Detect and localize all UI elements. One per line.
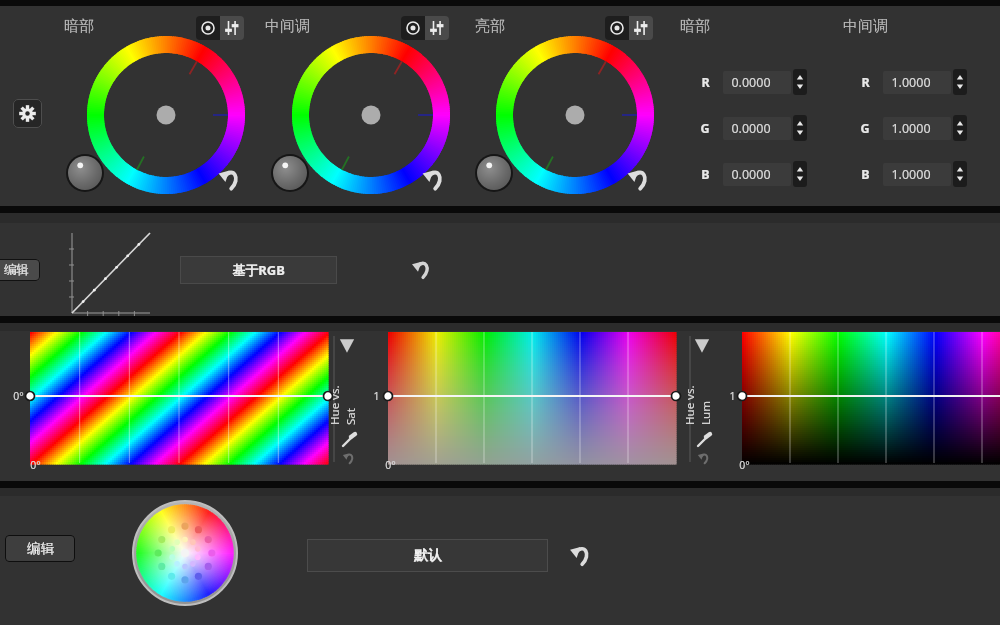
staticText: Hue vs. Lum [682, 375, 714, 425]
staticText: R [861, 74, 870, 91]
staticText: 1.0000 [891, 166, 931, 183]
staticText: 中间调 [843, 17, 888, 36]
staticText: Hue vs. Sat [327, 375, 359, 425]
button[interactable]: Slider mode [220, 16, 244, 40]
button[interactable]: Slider mode [629, 16, 653, 40]
staticText: 1.0000 [891, 74, 931, 91]
button[interactable]: 1.0000 [883, 117, 951, 140]
staticText: 0.0000 [731, 120, 771, 137]
staticText: G [860, 120, 870, 137]
staticText: B [701, 166, 710, 183]
button[interactable]: 0.0000 [723, 71, 791, 94]
button[interactable]: Adjust R [953, 69, 967, 95]
staticText: R [701, 74, 710, 91]
button[interactable]: Settings [13, 99, 42, 128]
staticText: 0.0000 [731, 74, 771, 91]
button[interactable]: 1.0000 [883, 163, 951, 186]
button[interactable]: 基于RGB [180, 256, 337, 284]
button[interactable]: Wheel mode [196, 16, 220, 40]
button[interactable]: Adjust R [793, 69, 807, 95]
staticText: 0° [30, 458, 41, 472]
staticText: G [700, 120, 710, 137]
staticText: 0.0000 [731, 166, 771, 183]
staticText: B [861, 166, 870, 183]
staticText: 默认 [414, 547, 442, 565]
staticText: 0° [385, 458, 396, 472]
staticText: 1.0000 [891, 120, 931, 137]
button[interactable]: Adjust B [793, 161, 807, 187]
button[interactable]: Wheel mode [401, 16, 425, 40]
button[interactable]: Wheel mode [605, 16, 629, 40]
staticText: 0° [13, 389, 24, 403]
button[interactable]: 编辑 [0, 259, 40, 281]
staticText: 中间调 [265, 17, 310, 36]
button[interactable]: 编辑 [5, 535, 75, 562]
staticText: 暗部 [680, 17, 710, 36]
staticText: 编辑 [27, 540, 54, 557]
staticText: 0° [739, 458, 750, 472]
staticText: 1 [373, 389, 380, 403]
staticText: 亮部 [475, 17, 505, 36]
button[interactable]: Slider mode [425, 16, 449, 40]
staticText: 基于RGB [232, 261, 285, 279]
staticText: 编辑 [4, 262, 29, 278]
button[interactable]: 0.0000 [723, 163, 791, 186]
button[interactable]: Adjust G [953, 115, 967, 141]
button[interactable]: Adjust B [953, 161, 967, 187]
button[interactable]: Adjust G [793, 115, 807, 141]
button[interactable]: 0.0000 [723, 117, 791, 140]
button[interactable]: 1.0000 [883, 71, 951, 94]
staticText: 暗部 [64, 17, 94, 36]
staticText: 1 [729, 389, 736, 403]
button[interactable]: 默认 [307, 539, 548, 572]
